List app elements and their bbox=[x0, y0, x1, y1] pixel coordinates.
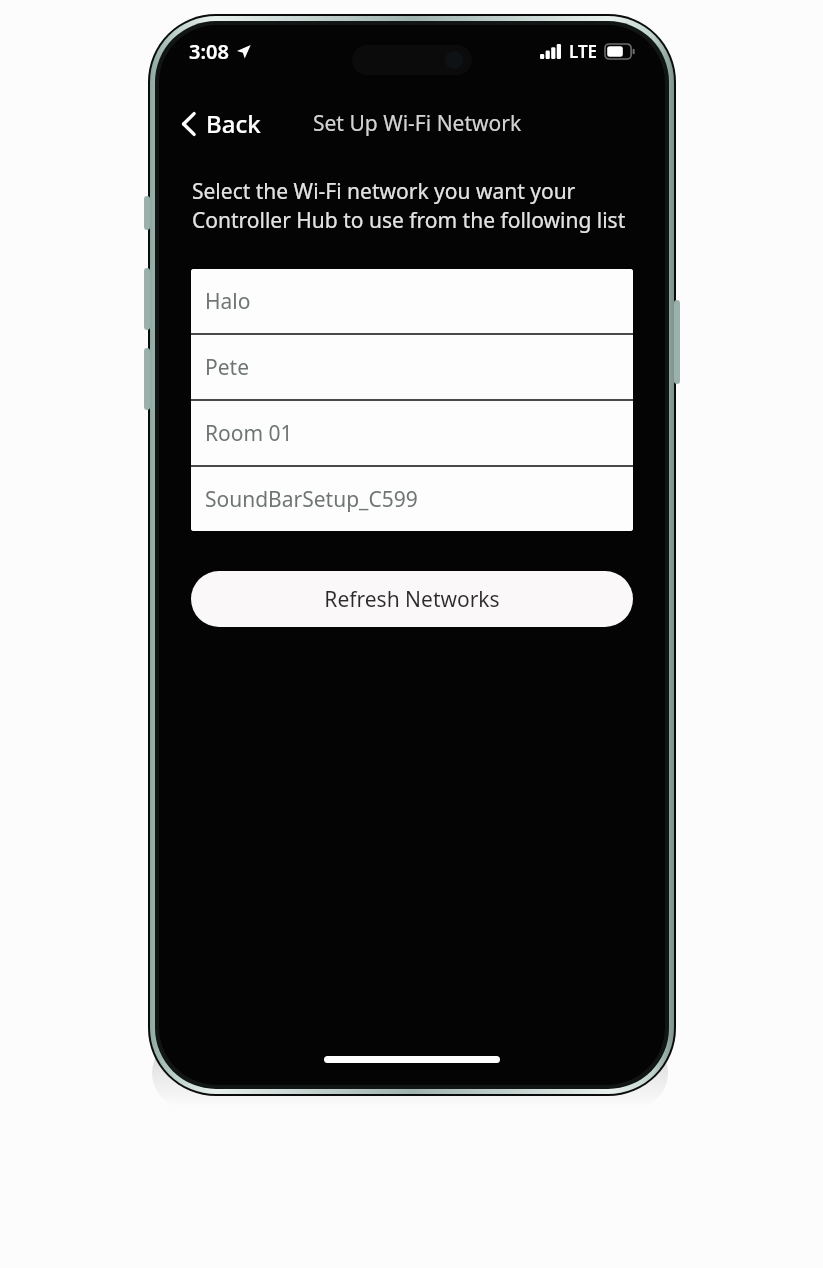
button[interactable]: Room 01 bbox=[191, 401, 633, 465]
staticText: Room 01 bbox=[205, 419, 293, 448]
staticText: Pete bbox=[205, 353, 249, 382]
staticText: Set Up Wi-Fi Network bbox=[313, 109, 522, 138]
button[interactable]: Halo bbox=[191, 269, 633, 333]
staticText: SoundBarSetup_C599 bbox=[205, 485, 418, 514]
button[interactable]: Refresh Networks bbox=[191, 571, 633, 627]
staticText: Controller Hub to use from the following… bbox=[192, 206, 626, 235]
staticText: Select the Wi-Fi network you want your bbox=[192, 177, 576, 206]
staticText: LTE bbox=[569, 40, 598, 63]
button[interactable]: Back bbox=[159, 101, 275, 146]
staticText: 3:08 bbox=[189, 38, 229, 65]
staticText: Refresh Networks bbox=[324, 585, 500, 614]
staticText: Halo bbox=[205, 287, 251, 316]
button[interactable]: SoundBarSetup_C599 bbox=[191, 467, 633, 531]
button[interactable]: Pete bbox=[191, 335, 633, 399]
staticText: Back bbox=[206, 107, 261, 140]
